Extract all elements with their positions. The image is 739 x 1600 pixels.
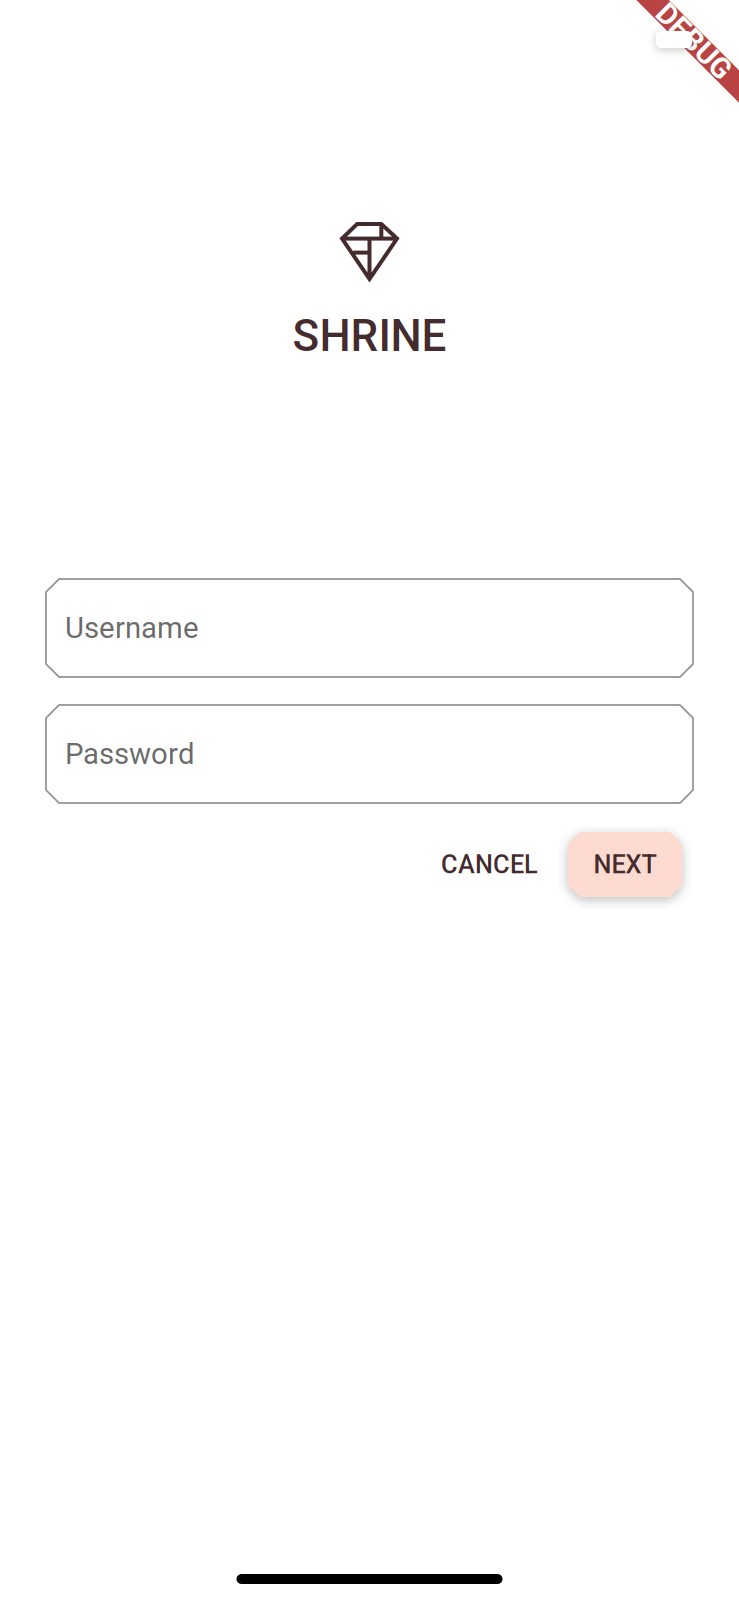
- staticText: SHRINE: [292, 310, 446, 362]
- button[interactable]: CANCEL: [411, 832, 568, 897]
- staticText: DEBUG: [647, 24, 739, 59]
- staticText: CANCEL: [441, 850, 538, 879]
- staticText: NEXT: [593, 850, 656, 879]
- staticText: Username: [65, 611, 199, 645]
- button[interactable]: NEXT: [568, 832, 682, 897]
- button[interactable]: Password: [46, 705, 693, 803]
- staticText: Password: [65, 737, 195, 771]
- button[interactable]: Username: [46, 579, 693, 677]
